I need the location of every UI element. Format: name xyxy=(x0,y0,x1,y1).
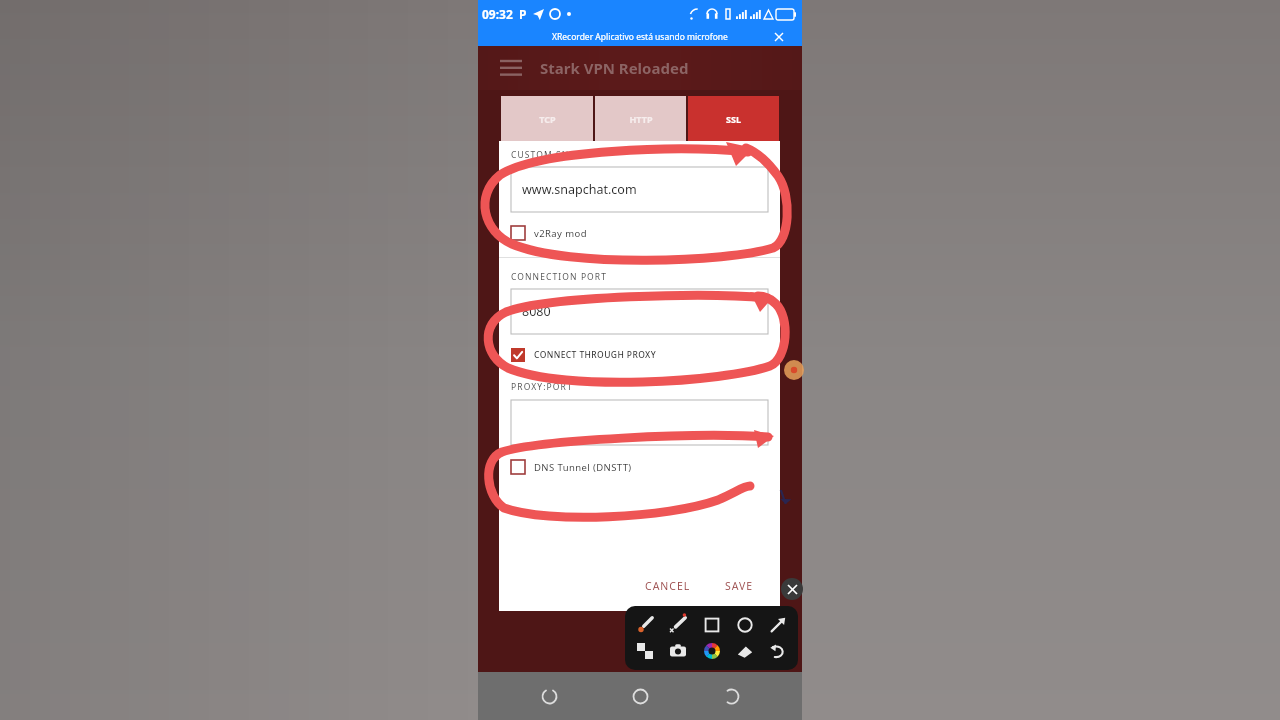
staticText: XRecorder Aplicativo está usando microfo… xyxy=(552,31,728,43)
staticText: SSL xyxy=(726,113,741,125)
staticText: HTTP xyxy=(629,113,653,125)
staticText: 09:32 xyxy=(482,6,513,22)
button[interactable]: SSL xyxy=(688,96,779,141)
button[interactable]: CONNECT THROUGH PROXY xyxy=(511,345,780,365)
button[interactable]: Open navigation menu xyxy=(498,55,524,81)
button[interactable]: HTTP xyxy=(595,96,686,141)
staticText: 8080 xyxy=(522,303,551,320)
button[interactable] xyxy=(511,400,768,445)
staticText: CONNECTION PORT xyxy=(511,271,608,283)
staticText: CONNECT THROUGH PROXY xyxy=(534,349,657,361)
button[interactable]: Mosaic xyxy=(633,639,657,663)
staticText: Stark VPN Reloaded xyxy=(540,58,689,78)
button[interactable]: Brush xyxy=(633,613,657,637)
button[interactable]: Eraser xyxy=(733,639,757,663)
button[interactable]: Close notification xyxy=(772,30,786,44)
button[interactable] xyxy=(511,289,768,334)
staticText: CUSTOM SNI xyxy=(511,149,574,161)
button[interactable]: Magic wand xyxy=(666,613,690,637)
button[interactable]: Screenshot xyxy=(666,639,690,663)
button[interactable]: Undo xyxy=(766,639,790,663)
staticText: SAVE xyxy=(725,579,754,593)
staticText: v2Ray mod xyxy=(534,227,587,240)
button[interactable]: DNS Tunnel (DNSTT) xyxy=(511,457,780,477)
button[interactable]: v2Ray mod xyxy=(511,223,780,243)
staticText: CANCEL xyxy=(645,579,691,593)
button[interactable]: Recent apps xyxy=(529,676,569,716)
staticText: DNS Tunnel (DNSTT) xyxy=(534,461,632,474)
button[interactable]: Color xyxy=(700,639,724,663)
staticText: www.snapchat.com xyxy=(522,181,637,198)
button[interactable]: TCP xyxy=(501,96,593,141)
button[interactable] xyxy=(511,167,768,212)
button[interactable]: Ellipse xyxy=(733,613,757,637)
button[interactable]: CANCEL xyxy=(641,575,695,597)
button[interactable]: Home xyxy=(620,676,660,716)
button[interactable]: Close overlay xyxy=(781,578,803,600)
button[interactable]: SAVE xyxy=(721,575,758,597)
button[interactable]: Back xyxy=(711,676,751,716)
staticText: PROXY:PORT xyxy=(511,381,573,393)
staticText: P xyxy=(519,6,527,22)
staticText: TCP xyxy=(539,113,556,125)
button[interactable]: Rectangle xyxy=(700,613,724,637)
button[interactable]: Arrow xyxy=(766,613,790,637)
